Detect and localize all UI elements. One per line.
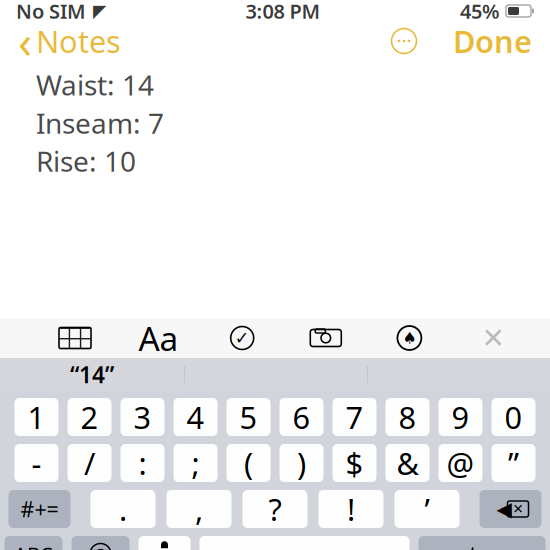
staticText: 7 [345, 397, 363, 437]
staticText: 1 [27, 397, 45, 437]
staticText: 3 [133, 397, 151, 437]
staticText: Aa [139, 316, 179, 360]
button[interactable]: ? [242, 490, 307, 528]
staticText: 8 [398, 397, 416, 437]
button[interactable]: / [67, 444, 111, 482]
staticText: 6 [292, 397, 310, 437]
button[interactable]: ABC [4, 536, 62, 550]
button[interactable]: ) [279, 444, 323, 482]
staticText: ’ [424, 489, 429, 529]
staticText: 2 [80, 397, 98, 437]
button[interactable]: ‹ [12, 21, 127, 61]
staticText: : [138, 443, 146, 483]
staticText: 3:08 PM [245, 0, 320, 24]
button[interactable]: $ [332, 444, 376, 482]
button[interactable]: Checklist [219, 322, 265, 354]
button[interactable]: “14” [0, 359, 184, 390]
staticText: & [396, 443, 418, 483]
button[interactable]: Markup [386, 322, 432, 354]
button[interactable]: ” [491, 444, 535, 482]
button[interactable]: 9 [438, 398, 482, 436]
button[interactable]: Hide keyboard [470, 322, 516, 354]
button[interactable]: ( [226, 444, 270, 482]
staticText: , [195, 489, 203, 529]
button[interactable]: ! [318, 490, 383, 528]
staticText: ✓ [235, 328, 250, 348]
staticText: 0 [504, 397, 522, 437]
staticText: 5 [239, 397, 257, 437]
button[interactable]: - [14, 444, 58, 482]
staticText: return [446, 538, 518, 550]
button[interactable]: 8 [385, 398, 429, 436]
button[interactable]: Insert photo or video [303, 322, 349, 354]
button[interactable]: 1 [14, 398, 58, 436]
staticText: $ [345, 443, 363, 483]
staticText: Notes [36, 21, 121, 61]
staticText: ( [244, 443, 253, 483]
button[interactable]: return [418, 536, 545, 550]
button[interactable]: 4 [173, 398, 217, 436]
button[interactable]: ; [173, 444, 217, 482]
button[interactable]: Insert table [52, 322, 98, 354]
staticText: #+= [20, 495, 58, 523]
staticText: No SIM [16, 0, 86, 24]
button[interactable]: #+= [8, 490, 70, 528]
staticText: 45% [460, 0, 500, 24]
staticText: ABC [14, 541, 53, 550]
staticText: ✕ [512, 501, 523, 516]
staticText: ) [297, 443, 306, 483]
button[interactable]: 2 [67, 398, 111, 436]
staticText: . [119, 489, 127, 529]
staticText: ◀ [496, 498, 511, 520]
button[interactable]: ’ [394, 490, 459, 528]
button[interactable]: More [383, 20, 425, 62]
button[interactable]: Done [447, 21, 538, 61]
button[interactable]: 3 [120, 398, 164, 436]
button[interactable]: 5 [226, 398, 270, 436]
staticText: ♠ [402, 329, 416, 347]
staticText: ◤ [93, 1, 106, 21]
staticText: 9 [451, 397, 469, 437]
staticText: ! [347, 489, 355, 529]
staticText: Inseam: 7 [36, 104, 164, 141]
button[interactable]: Next keyboard [71, 536, 129, 550]
staticText: Waist: 14 [36, 66, 154, 103]
button[interactable]: Delete [479, 490, 541, 528]
button[interactable]: . [90, 490, 155, 528]
button[interactable]: 7 [332, 398, 376, 436]
staticText: 4 [186, 397, 204, 437]
staticText: - [31, 443, 41, 483]
button[interactable]: Dictation [138, 536, 190, 550]
button[interactable]: & [385, 444, 429, 482]
button[interactable]: Text format [136, 322, 182, 354]
button[interactable]: 6 [279, 398, 323, 436]
staticText: ” [508, 443, 519, 483]
button[interactable]: 0 [491, 398, 535, 436]
staticText: Done [453, 21, 532, 61]
button[interactable]: @ [438, 444, 482, 482]
button[interactable]: , [166, 490, 231, 528]
staticText: @ [446, 443, 474, 483]
staticText: Rise: 10 [36, 142, 136, 180]
staticText: / [84, 443, 95, 483]
staticText: ‹ [18, 11, 32, 71]
button[interactable]: : [120, 444, 164, 482]
staticText: “14” [70, 359, 114, 389]
staticText: ? [268, 489, 281, 529]
staticText: ✕ [481, 322, 504, 354]
staticText: ; [191, 443, 199, 483]
